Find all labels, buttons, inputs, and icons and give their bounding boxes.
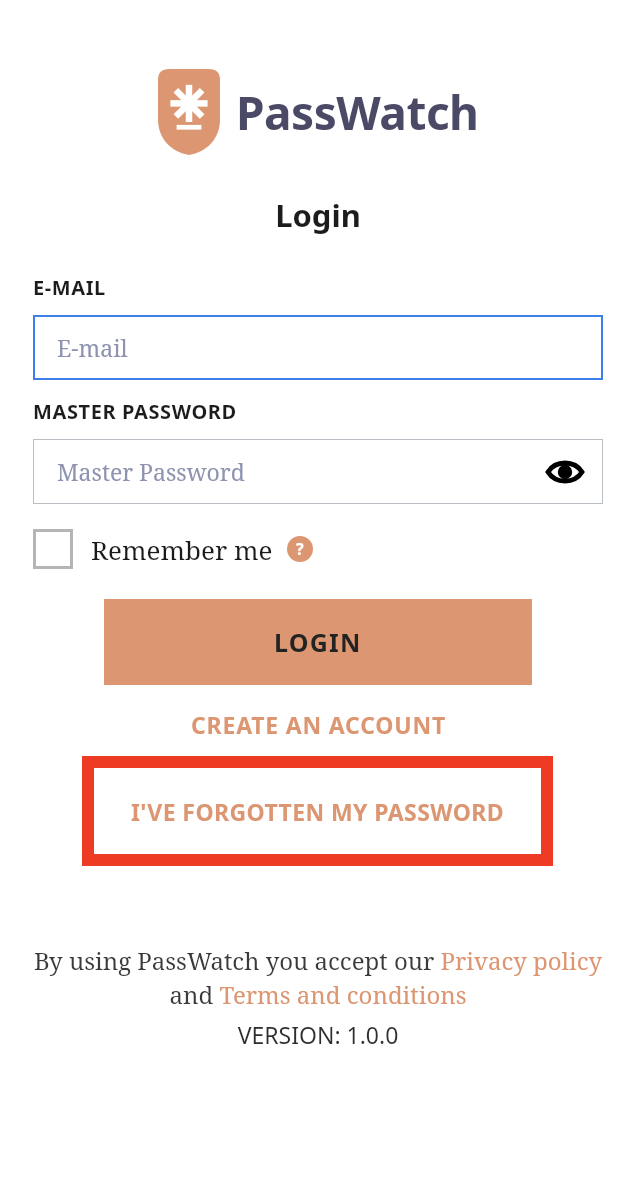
button[interactable]: I'VE FORGOTTEN MY PASSWORD — [82, 756, 553, 866]
staticText: ? — [296, 538, 304, 560]
staticText: Master Password — [57, 456, 245, 487]
button[interactable]: Show password — [545, 452, 585, 492]
button[interactable]: Remember me — [33, 529, 73, 569]
button[interactable]: Remember me — [91, 532, 273, 567]
button[interactable]: Master Password — [33, 439, 603, 504]
staticText: E-MAIL — [33, 274, 106, 301]
staticText: E-mail — [57, 332, 128, 363]
staticText: I'VE FORGOTTEN MY PASSWORD — [131, 796, 504, 827]
staticText: CREATE AN ACCOUNT — [191, 709, 446, 740]
staticText: Login — [0, 194, 636, 236]
staticText: VERSION: 1.0.0 — [0, 1019, 636, 1050]
staticText: PassWatch — [236, 81, 479, 144]
button[interactable]: By using PassWatch you accept our Privac… — [30, 944, 606, 1011]
staticText: LOGIN — [274, 625, 362, 659]
button[interactable]: LOGIN — [104, 599, 532, 685]
staticText: MASTER PASSWORD — [33, 398, 237, 425]
button[interactable]: Help — [287, 536, 313, 562]
button[interactable]: E-mail — [33, 315, 603, 380]
button[interactable]: CREATE AN ACCOUNT — [0, 706, 636, 742]
